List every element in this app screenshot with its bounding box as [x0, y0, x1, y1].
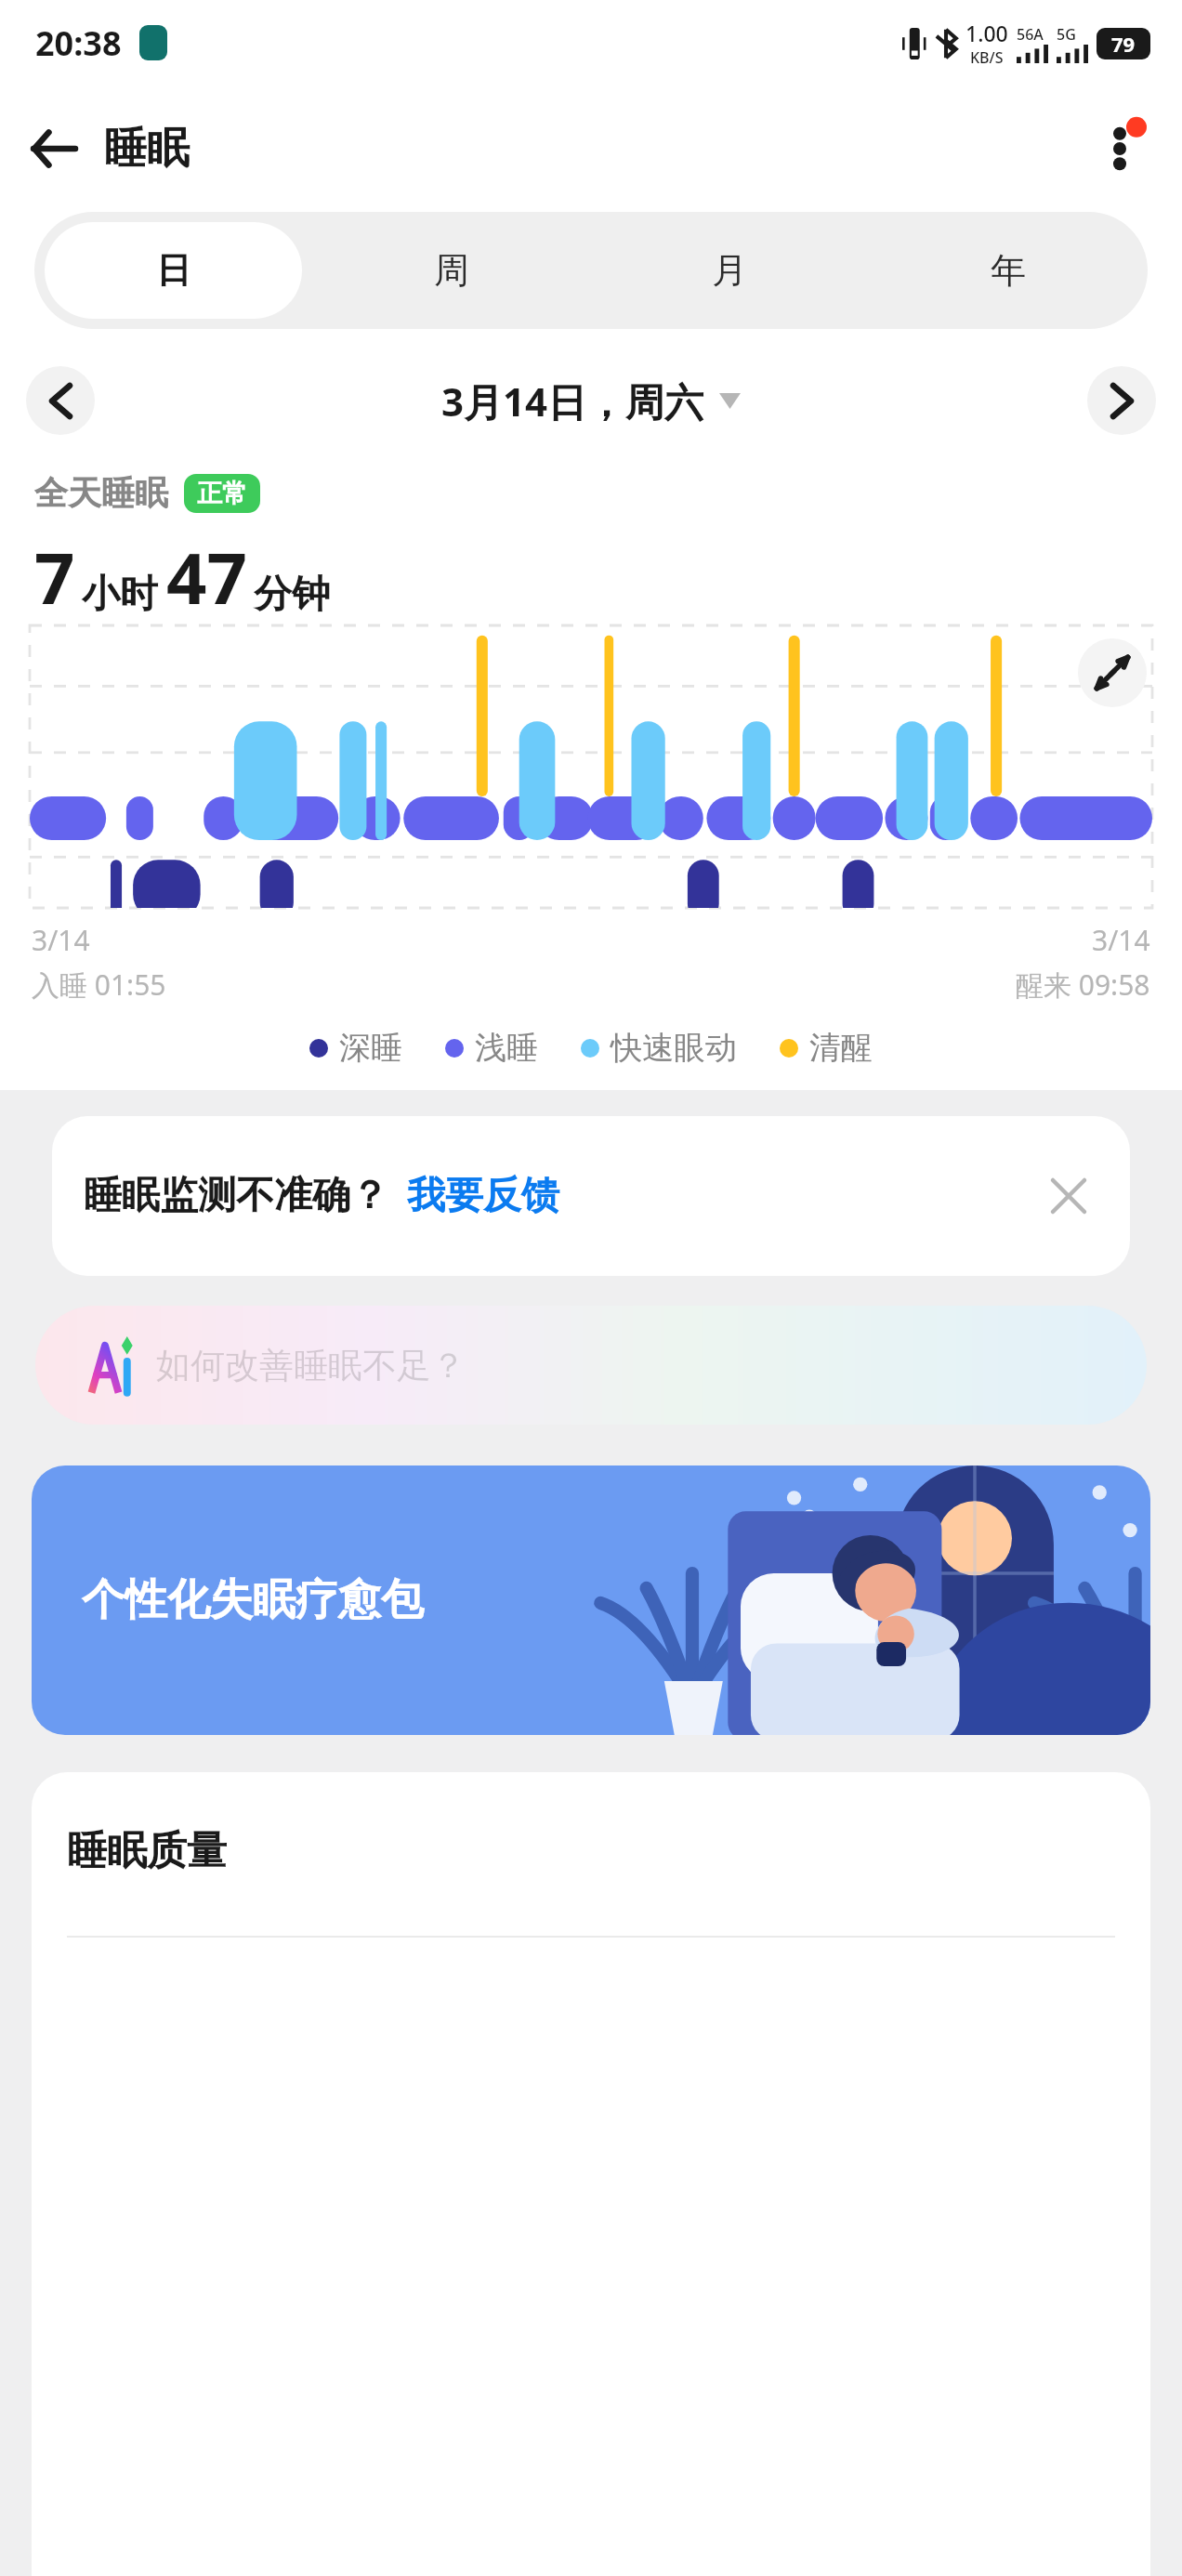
staticText: 个性化失眠疗愈包: [82, 1573, 424, 1627]
button[interactable]: 睡眠监测不准确？: [52, 1116, 1130, 1276]
staticText: 20:38: [35, 20, 122, 66]
staticText: 深睡: [339, 1028, 402, 1068]
button[interactable]: 3月14日，周六: [95, 329, 1087, 472]
button[interactable]: Dismiss: [1039, 1166, 1098, 1226]
button[interactable]: 月: [600, 222, 859, 319]
staticText: 5G: [1057, 24, 1076, 45]
button[interactable]: 浅睡: [445, 1028, 538, 1068]
staticText: 日: [156, 248, 191, 293]
staticText: 3月14日，周六: [441, 375, 704, 427]
staticText: 如何改善睡眠不足？: [156, 1344, 466, 1387]
button[interactable]: 年: [879, 222, 1137, 319]
button[interactable]: More options: [1078, 107, 1162, 191]
button[interactable]: Back: [13, 108, 95, 190]
staticText: 睡眠: [104, 122, 190, 176]
staticText: 清醒: [809, 1028, 873, 1068]
staticText: 月: [712, 248, 747, 293]
staticText: 3/14: [1092, 921, 1150, 959]
staticText: 1.00: [965, 19, 1008, 47]
button[interactable]: 清醒: [780, 1028, 873, 1068]
staticText: 年: [991, 248, 1026, 293]
staticText: 快速眼动: [611, 1028, 737, 1068]
button[interactable]: 日: [45, 222, 302, 319]
staticText: 睡眠监测不准确？: [84, 1172, 388, 1220]
staticText: 醒来 09:58: [1016, 966, 1150, 1004]
staticText: 56A: [1017, 24, 1044, 45]
button[interactable]: 周: [322, 222, 580, 319]
staticText: 7: [34, 529, 75, 625]
staticText: 正常: [197, 478, 247, 509]
staticText: 小时: [82, 571, 158, 619]
staticText: 3/14: [32, 921, 90, 959]
button[interactable]: 深睡: [309, 1028, 402, 1068]
staticText: 周: [434, 248, 469, 293]
staticText: 睡眠质量: [67, 1826, 227, 1876]
button[interactable]: 如何改善睡眠不足？: [35, 1306, 1147, 1425]
staticText: 全天睡眠: [34, 472, 168, 514]
staticText: 分钟: [254, 571, 330, 619]
button[interactable]: 快速眼动: [581, 1028, 737, 1068]
staticText: KB/S: [970, 47, 1004, 68]
staticText: 浅睡: [475, 1028, 538, 1068]
button[interactable]: 睡眠质量: [32, 1772, 1150, 2576]
staticText: 79: [1111, 30, 1136, 58]
staticText: 入睡 01:55: [32, 966, 166, 1004]
staticText: 47: [166, 529, 247, 625]
button[interactable]: Expand chart: [1078, 638, 1147, 707]
button[interactable]: 我要反馈: [407, 1172, 559, 1220]
button[interactable]: Previous day: [26, 366, 95, 435]
button[interactable]: Next day: [1087, 366, 1156, 435]
button[interactable]: 个性化失眠疗愈包: [32, 1465, 1150, 1735]
